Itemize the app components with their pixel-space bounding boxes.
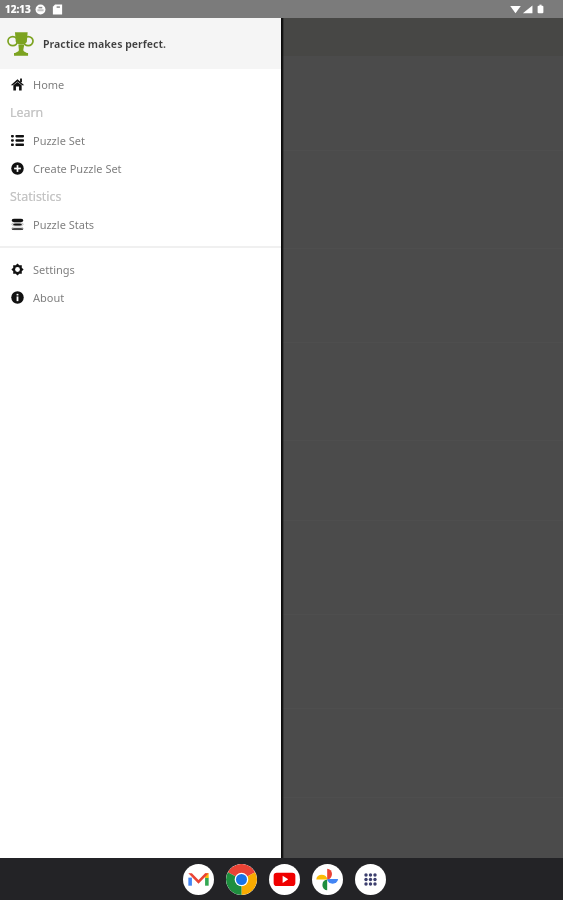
- button[interactable]: Puzzle Stats: [0, 210, 281, 238]
- staticText: Puzzle Set: [33, 133, 85, 148]
- button[interactable]: Practice makes perfect.: [0, 18, 281, 69]
- staticText: Statistics: [10, 188, 62, 205]
- button[interactable]: Puzzle Set: [0, 126, 281, 154]
- staticText: Learn: [10, 104, 44, 121]
- staticText: Home: [33, 77, 65, 92]
- button[interactable]: Settings: [0, 255, 281, 283]
- staticText: Practice makes perfect.: [43, 37, 166, 51]
- staticText: Create Puzzle Set: [33, 161, 122, 176]
- button[interactable]: Home: [0, 70, 281, 98]
- button[interactable]: All apps: [355, 864, 386, 895]
- staticText: Puzzle Stats: [33, 217, 95, 232]
- staticText: About: [33, 290, 65, 305]
- staticText: 12:13: [5, 2, 31, 16]
- button[interactable]: Photos: [312, 864, 343, 895]
- staticText: Settings: [33, 262, 75, 277]
- button[interactable]: YouTube: [269, 864, 300, 895]
- button[interactable]: Gmail: [183, 864, 214, 895]
- button[interactable]: Chrome: [226, 864, 257, 895]
- button[interactable]: About: [0, 283, 281, 311]
- button[interactable]: Create Puzzle Set: [0, 154, 281, 182]
